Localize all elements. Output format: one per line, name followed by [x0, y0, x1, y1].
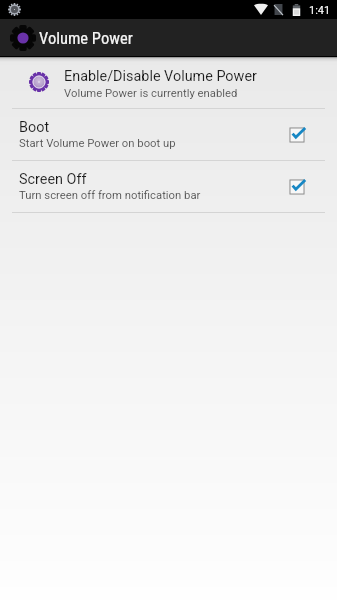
staticText: Volume Power: [39, 29, 133, 48]
button[interactable]: App icon: [10, 25, 36, 51]
staticText: Volume Power is currently enabled: [64, 87, 238, 100]
button[interactable]: Boot: [0, 109, 337, 160]
staticText: Enable/Disable Volume Power: [64, 68, 257, 85]
staticText: Boot: [19, 119, 50, 136]
staticText: Start Volume Power on boot up: [19, 137, 176, 150]
button[interactable]: Screen Off: [0, 161, 337, 212]
staticText: Screen Off: [19, 171, 87, 188]
staticText: 1:41: [309, 4, 331, 17]
staticText: Turn screen off from notification bar: [19, 189, 201, 202]
button[interactable]: Enable/Disable Volume Power: [0, 56, 337, 108]
